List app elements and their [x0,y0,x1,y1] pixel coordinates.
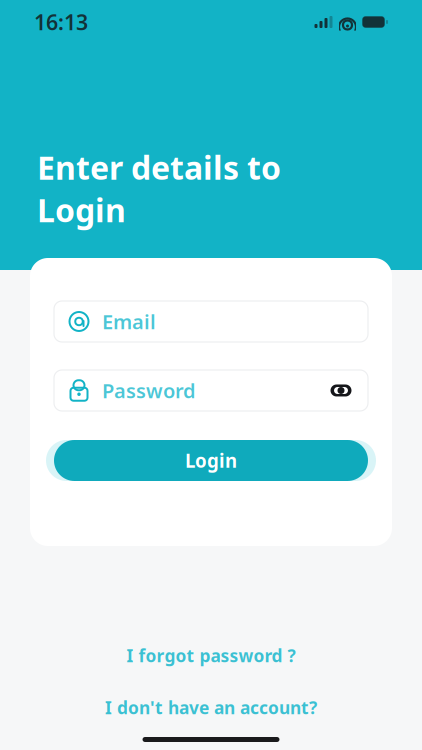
staticText: Login [185,448,237,473]
button[interactable]: Password [54,370,368,411]
button[interactable]: I don't have an account? [95,692,327,723]
button[interactable]: Login [54,440,368,481]
button[interactable]: I forgot password ? [116,640,305,671]
staticText: 16:13 [34,8,88,36]
staticText: Email [102,308,156,335]
button[interactable]: Email [54,301,368,342]
staticText: I don't have an account? [105,696,317,719]
staticText: Password [102,377,196,404]
staticText: Enter details to Login [37,146,281,231]
staticText: I forgot password ? [126,644,295,667]
button[interactable]: Show password [328,380,354,400]
